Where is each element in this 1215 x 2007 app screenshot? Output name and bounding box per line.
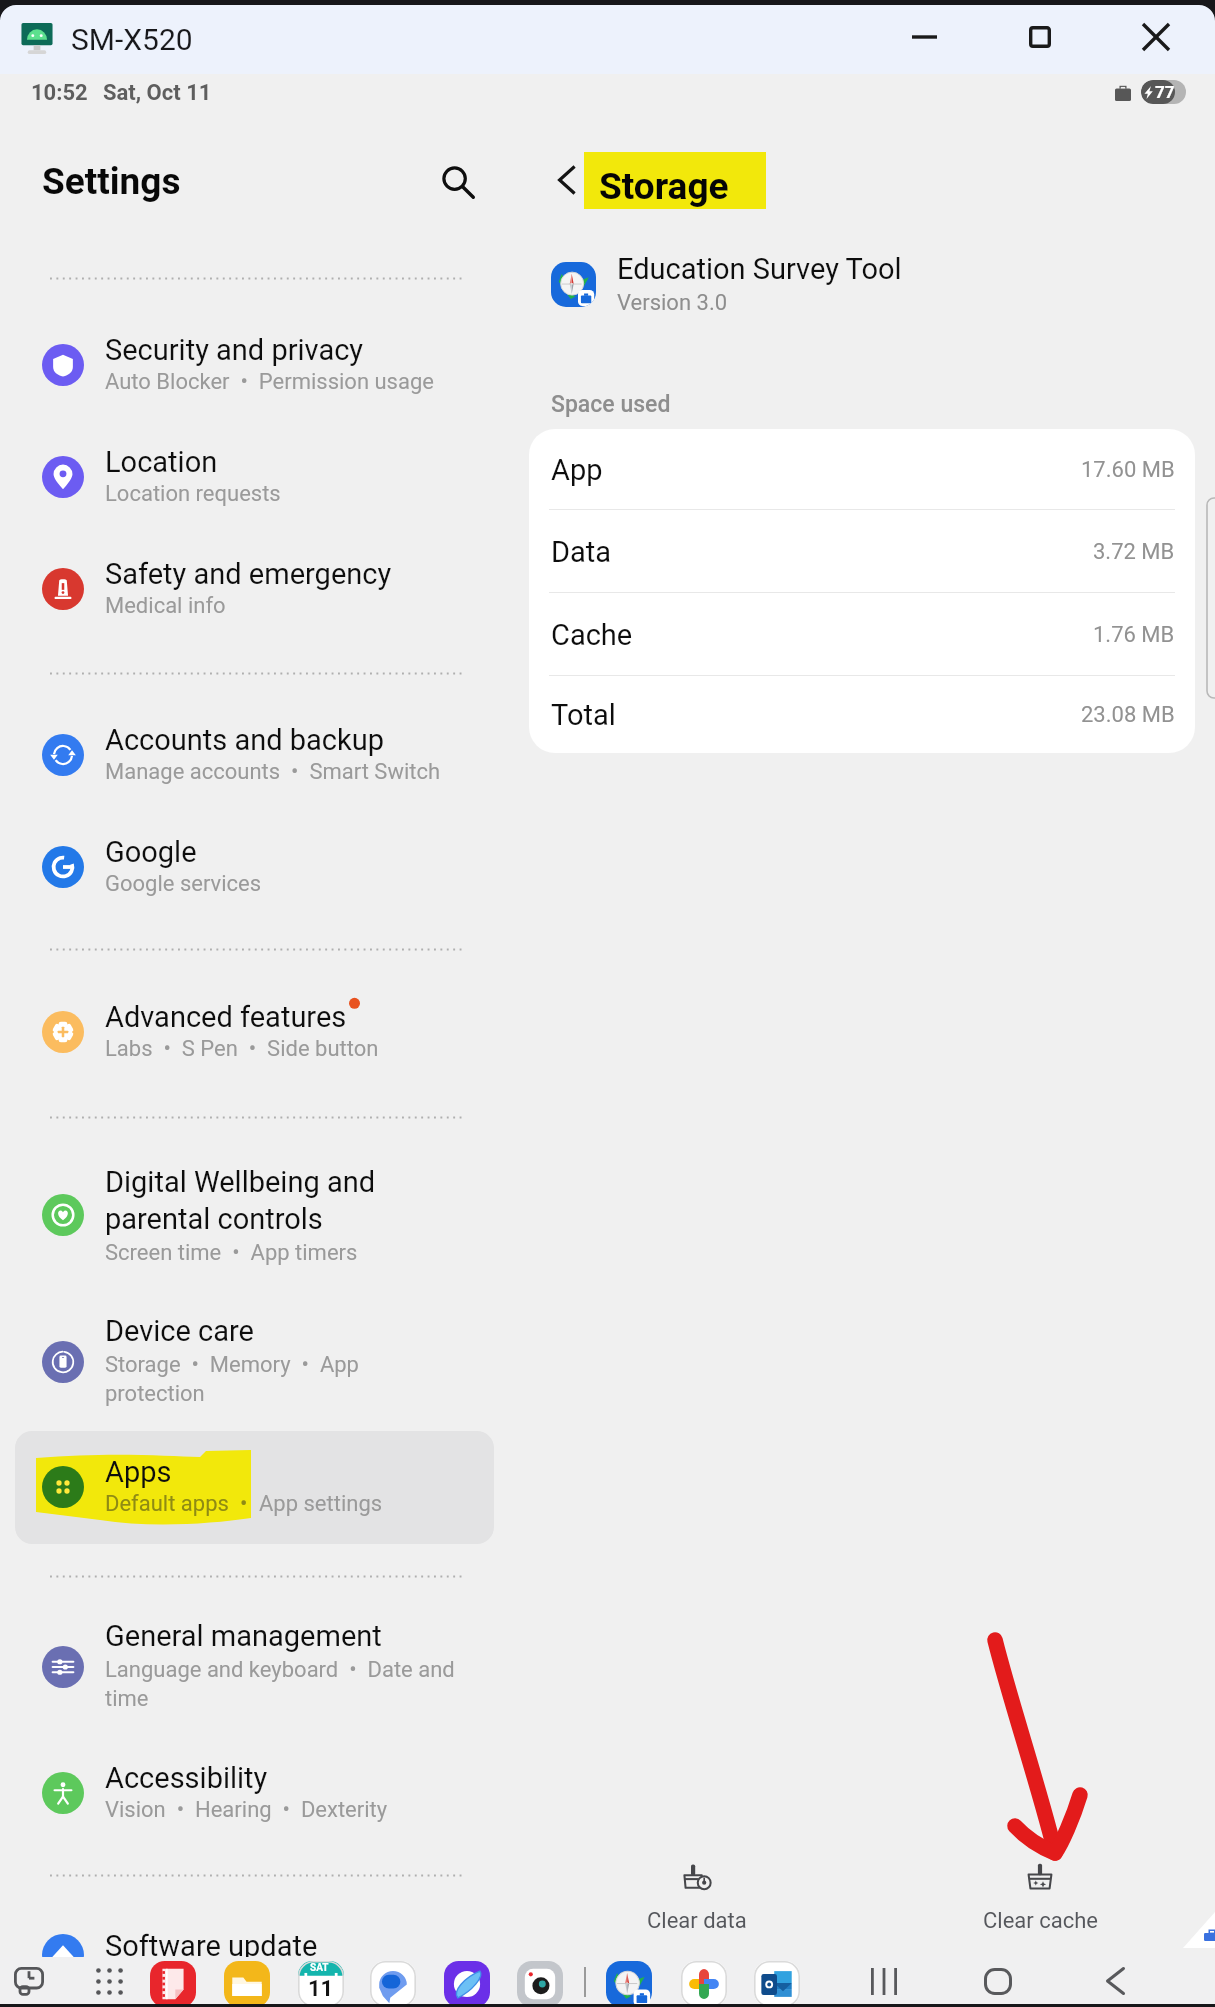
staticText: Software update [105, 1929, 318, 1963]
button[interactable]: survey [606, 1961, 652, 2007]
button[interactable]: Minimize [865, 2, 983, 72]
staticText: Apps [105, 1455, 172, 1489]
button[interactable]: Clear cache [950, 1862, 1130, 1942]
button[interactable]: outlook [754, 1961, 800, 2007]
staticText: Google services [105, 871, 262, 897]
button[interactable]: files [224, 1961, 270, 2007]
button[interactable] [15, 699, 494, 812]
staticText: • [229, 1491, 259, 1517]
button[interactable] [15, 811, 494, 924]
staticText: App settings [259, 1491, 383, 1517]
button[interactable]: cal [298, 1961, 344, 2007]
button[interactable]: browser [444, 1961, 490, 2007]
staticText: Education Survey Tool [617, 252, 902, 286]
staticText: 23.08 MB [1081, 702, 1175, 728]
staticText: 11 [308, 1976, 334, 2002]
button[interactable] [15, 1431, 494, 1544]
button[interactable] [15, 1737, 494, 1850]
staticText: Labs • S Pen • Side button [105, 1036, 379, 1062]
staticText: Security and privacy [105, 333, 364, 367]
staticText: Version 3.0 [617, 290, 728, 316]
staticText: Location requests [105, 481, 281, 507]
button[interactable]: Close [1097, 2, 1215, 72]
button[interactable]: Cache [529, 593, 1195, 676]
staticText: SAT [310, 1962, 329, 1974]
staticText: Google [105, 835, 197, 869]
staticText: Settings [42, 160, 181, 203]
button[interactable]: Back [538, 152, 594, 208]
button[interactable] [15, 421, 494, 534]
staticText: 10:52 [31, 80, 88, 106]
button[interactable]: All apps [81, 1957, 137, 2005]
staticText: Accounts and backup [105, 723, 385, 757]
button[interactable] [15, 1611, 494, 1724]
button[interactable]: msg [370, 1961, 416, 2007]
staticText: Data [551, 535, 612, 569]
button[interactable]: Data [529, 510, 1195, 593]
staticText: Storage [599, 165, 729, 208]
button[interactable]: photos [681, 1961, 727, 2007]
button[interactable]: Storage [584, 152, 766, 209]
button[interactable]: Total [529, 676, 1195, 753]
staticText: Sat, Oct 11 [103, 80, 212, 106]
staticText: Vision • Hearing • Dexterity [105, 1797, 388, 1823]
button[interactable] [15, 533, 494, 646]
button[interactable]: Recent apps [854, 1957, 914, 2005]
staticText: Location [105, 445, 218, 479]
staticText: Cache [551, 618, 633, 652]
staticText: Clear cache [983, 1908, 1098, 1934]
staticText: Storage • Memory • App protection [105, 1352, 359, 1406]
staticText: Screen time • App timers [105, 1240, 358, 1266]
button[interactable]: Search [430, 154, 486, 210]
staticText: General management [105, 1619, 382, 1653]
staticText: 77 [1155, 82, 1175, 102]
staticText: Space used [551, 391, 671, 418]
staticText: Language and keyboard • Date and time [105, 1657, 455, 1711]
button[interactable]: Back [1085, 1957, 1145, 2005]
staticText: Digital Wellbeing and parental controls [105, 1165, 376, 1236]
button[interactable]: Clear data [607, 1862, 787, 1942]
button[interactable]: Home [968, 1957, 1028, 2005]
staticText: Total [551, 698, 616, 732]
button[interactable]: Taskbar [1, 1957, 57, 2005]
button[interactable]: camera [517, 1961, 563, 2007]
staticText: SM-X520 [71, 22, 193, 57]
button[interactable]: App [529, 429, 1195, 510]
staticText: Manage accounts • Smart Switch [105, 759, 441, 785]
staticText: Device care [105, 1314, 254, 1348]
staticText: Auto Blocker • Permission usage [105, 369, 434, 395]
staticText: 17.60 MB [1081, 457, 1175, 483]
button[interactable] [15, 1159, 494, 1272]
staticText: App [551, 453, 603, 487]
button[interactable] [15, 1306, 494, 1419]
button[interactable] [15, 309, 494, 422]
staticText: 3.72 MB [1093, 539, 1175, 565]
button[interactable]: notes [150, 1961, 196, 2007]
staticText: Clear data [647, 1908, 747, 1934]
button[interactable] [15, 976, 494, 1089]
staticText: Medical info [105, 593, 226, 619]
staticText: Default apps [105, 1491, 229, 1517]
button[interactable]: Maximize [983, 2, 1097, 72]
staticText: Safety and emergency [105, 557, 392, 591]
staticText: Accessibility [105, 1761, 268, 1795]
staticText: 1.76 MB [1093, 622, 1175, 648]
staticText: Advanced features [105, 1000, 347, 1034]
